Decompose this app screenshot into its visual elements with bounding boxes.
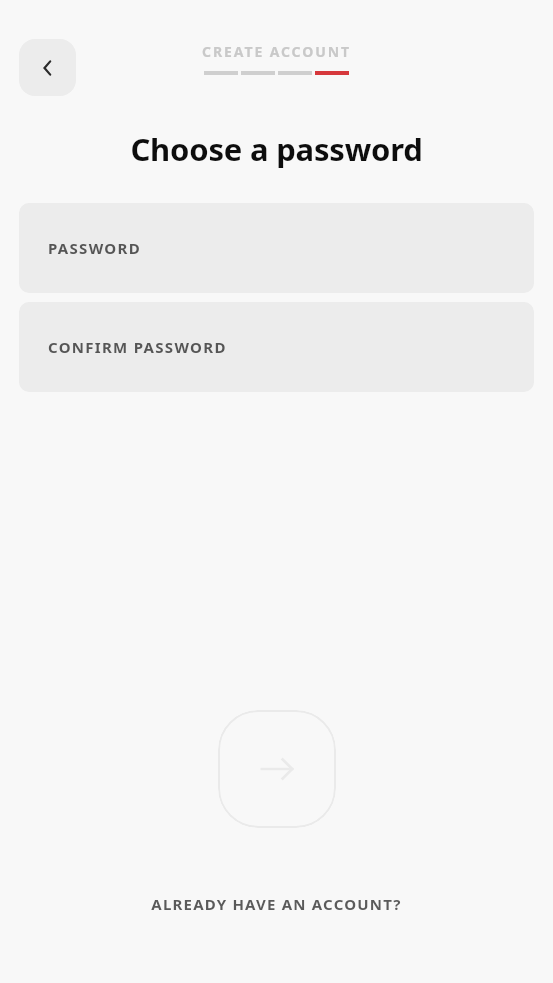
button[interactable]: Back (19, 39, 76, 96)
staticText: CONFIRM PASSWORD (48, 337, 227, 357)
staticText: PASSWORD (48, 238, 141, 258)
staticText: ALREADY HAVE AN ACCOUNT? (151, 894, 402, 914)
button[interactable]: CONFIRM PASSWORD (19, 302, 534, 392)
staticText: CREATE ACCOUNT (202, 42, 351, 61)
button[interactable]: Next (218, 710, 336, 828)
button[interactable]: ALREADY HAVE AN ACCOUNT? (137, 886, 416, 922)
staticText: Choose a password (24, 128, 529, 170)
button[interactable]: PASSWORD (19, 203, 534, 293)
